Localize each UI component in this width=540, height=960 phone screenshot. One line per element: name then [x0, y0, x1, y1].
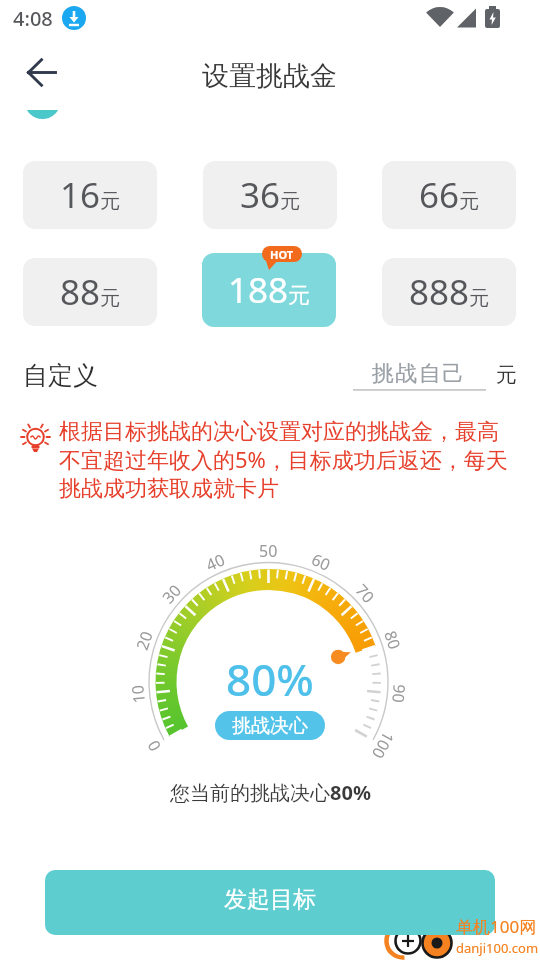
- staticText: 66元: [419, 171, 480, 219]
- button[interactable]: 66元: [382, 161, 516, 229]
- staticText: 4:08: [13, 5, 53, 32]
- staticText: 根据目标挑战的决心设置对应的挑战金，最高不宜超过年收入的5%，目标成功后返还，每…: [59, 418, 517, 502]
- staticText: 单机100网: [456, 915, 537, 938]
- button[interactable]: 888元: [382, 258, 516, 326]
- staticText: HOT: [270, 247, 294, 262]
- staticText: 挑战决心: [232, 714, 308, 738]
- staticText: 888元: [409, 268, 490, 316]
- staticText: 36元: [240, 171, 301, 219]
- staticText: 16元: [60, 171, 121, 219]
- button[interactable]: 16元: [23, 161, 157, 229]
- staticText: 设置挑战金: [202, 59, 337, 93]
- staticText: 发起目标: [224, 885, 316, 914]
- staticText: 88元: [60, 268, 121, 316]
- button[interactable]: 88元: [23, 258, 157, 326]
- button[interactable]: [14, 52, 58, 94]
- staticText: 您当前的挑战决心80%: [170, 779, 371, 806]
- staticText: 80%: [226, 649, 314, 709]
- staticText: 挑战自己: [371, 360, 465, 388]
- staticText: 188元: [228, 266, 311, 314]
- staticText: 自定义: [23, 360, 98, 391]
- button[interactable]: HOT: [262, 246, 302, 262]
- button[interactable]: 36元: [203, 161, 337, 229]
- button[interactable]: 挑战决心: [215, 711, 325, 740]
- staticText: danji100.com: [456, 939, 539, 957]
- button[interactable]: 挑战自己: [353, 355, 486, 393]
- staticText: 元: [496, 362, 517, 388]
- button[interactable]: 发起目标: [45, 870, 495, 935]
- button[interactable]: 188元: [202, 253, 336, 327]
